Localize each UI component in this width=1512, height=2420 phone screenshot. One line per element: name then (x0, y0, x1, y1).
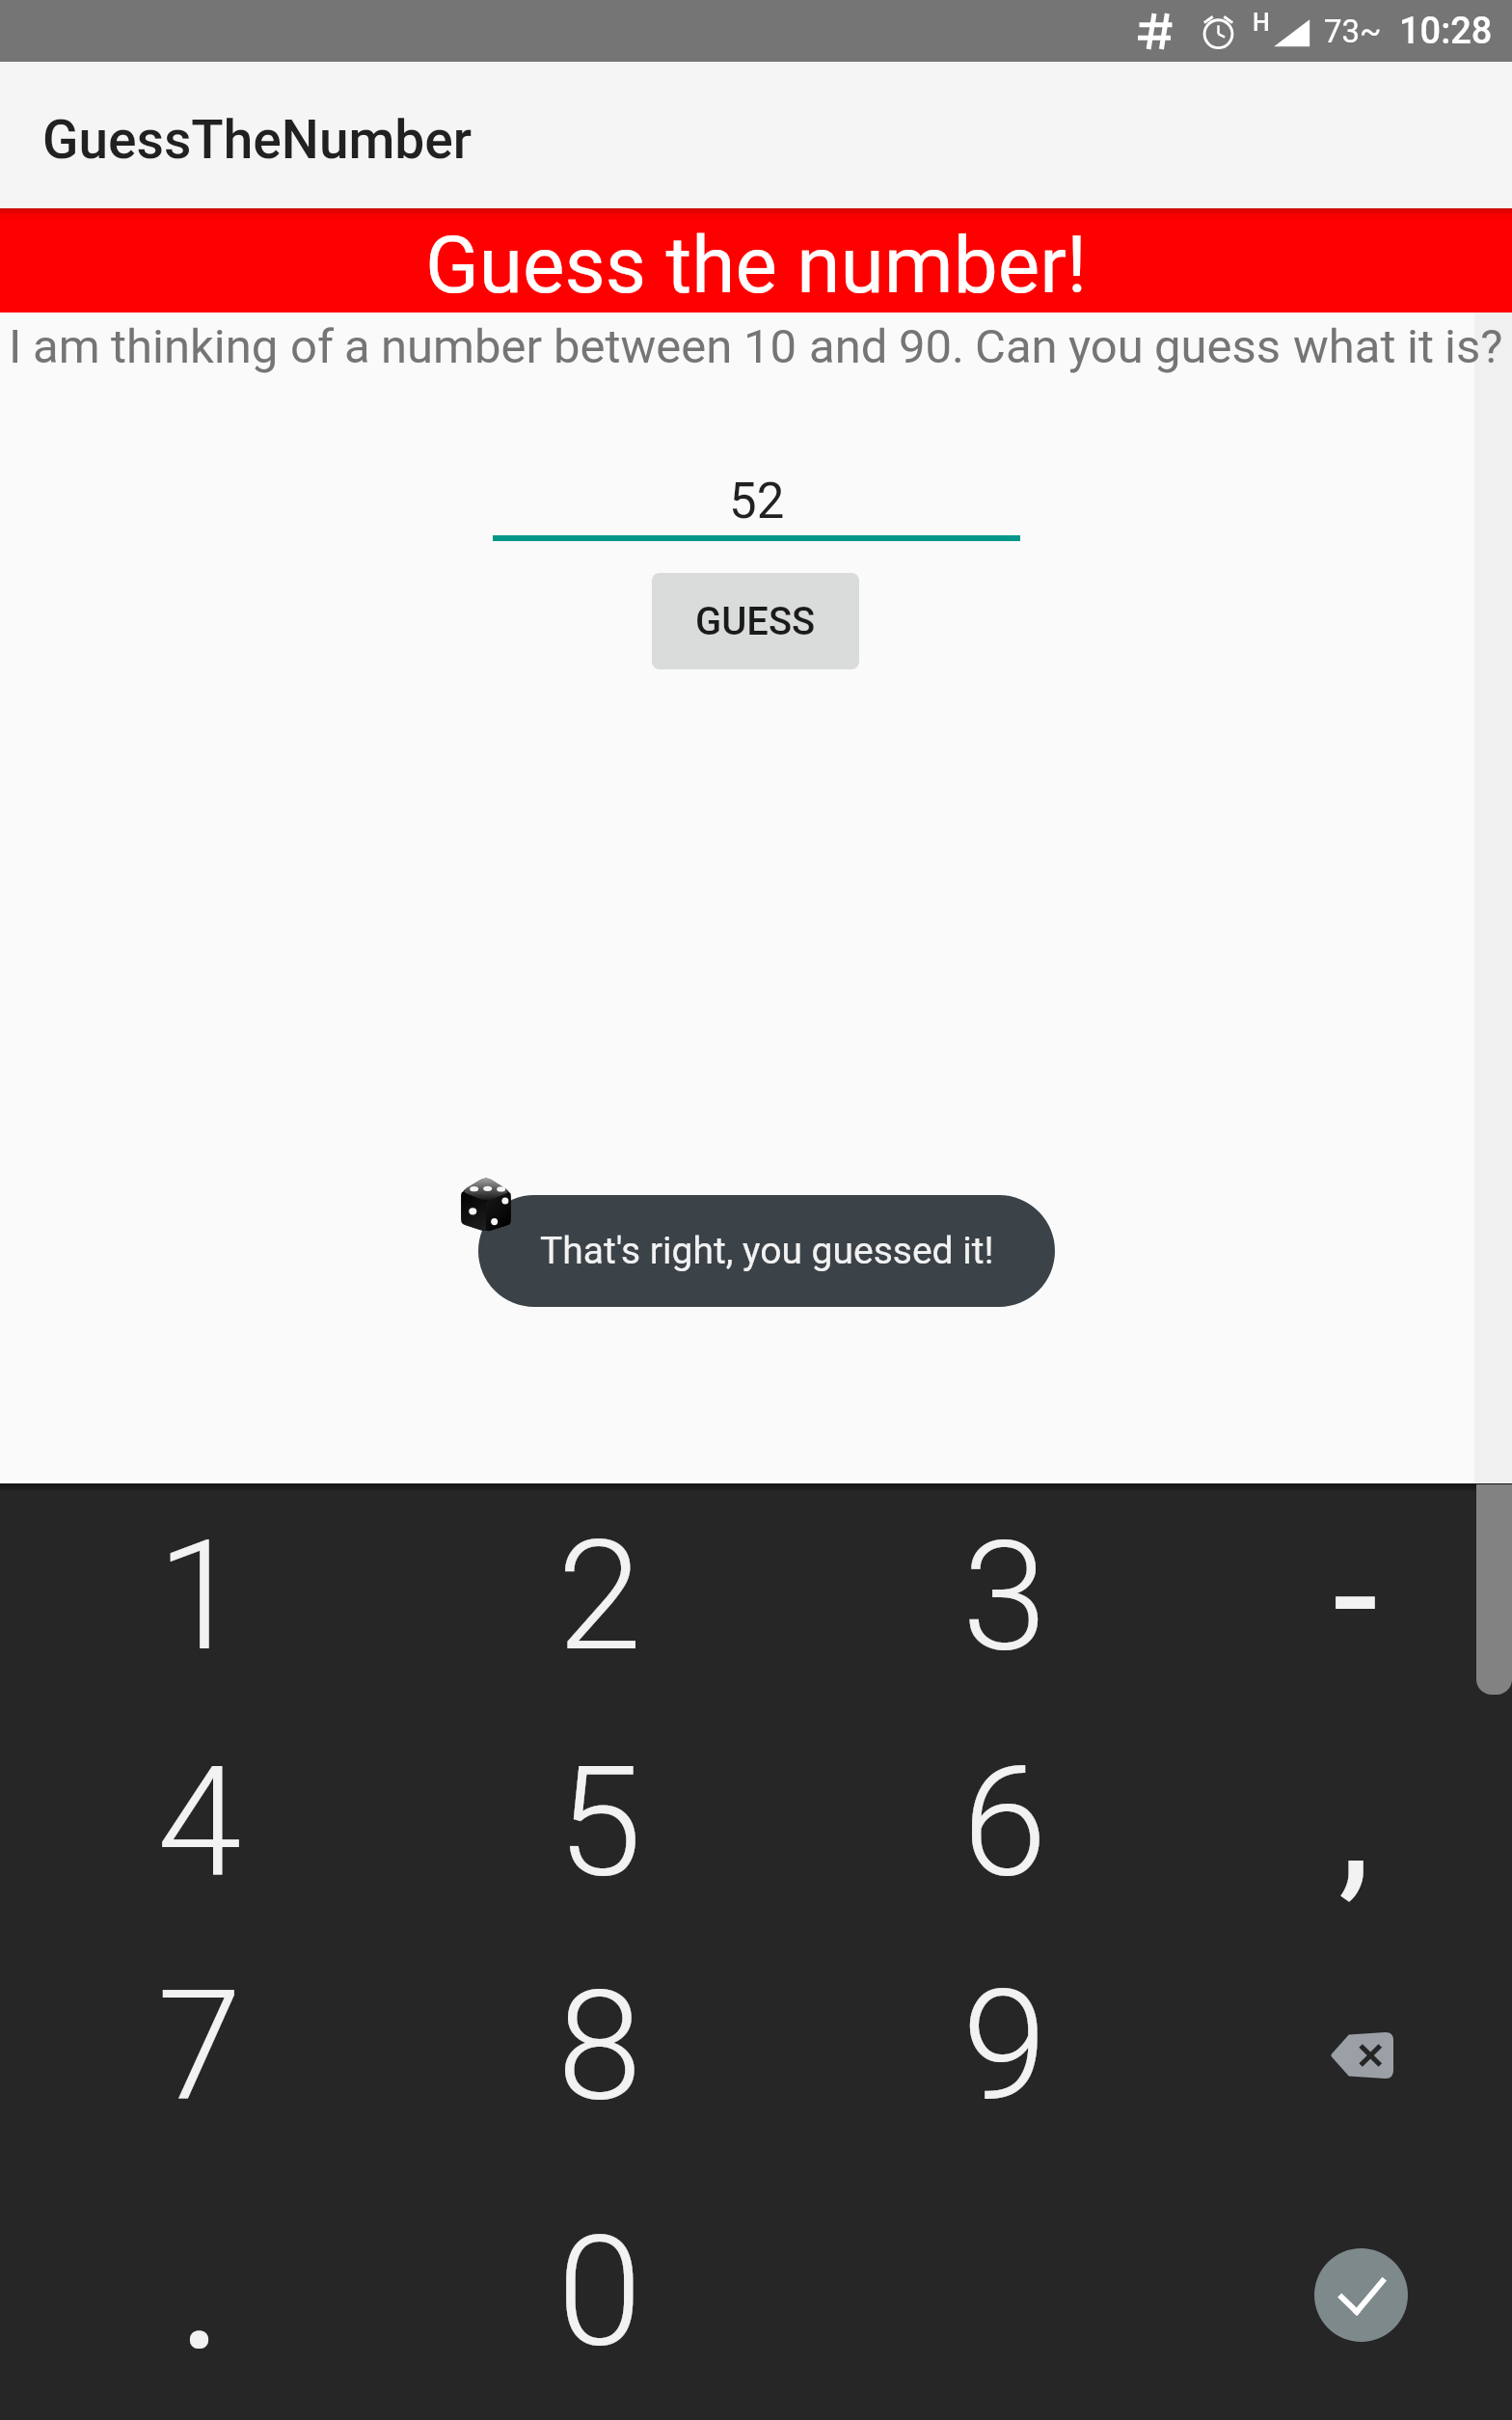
button[interactable]: . (26, 2185, 373, 2397)
button[interactable]: 0 (426, 2185, 773, 2397)
staticText: 4 (157, 1732, 242, 1911)
staticText: 7 (157, 1956, 242, 2134)
staticText: am (33, 319, 100, 374)
button[interactable]: GUESS (652, 573, 859, 669)
button[interactable]: 3 (831, 1489, 1178, 1701)
staticText: a (344, 319, 370, 374)
staticText: and (809, 319, 888, 374)
button[interactable]: - (1181, 1489, 1512, 1701)
button[interactable]: 6 (831, 1715, 1178, 1927)
staticText: . (178, 2195, 222, 2387)
staticText: I (9, 319, 22, 374)
button[interactable]: , (1181, 1715, 1512, 1927)
button[interactable]: 8 (426, 1939, 773, 2151)
staticText: of (290, 319, 334, 374)
staticText: 8 (557, 1956, 642, 2134)
staticText: 2 (557, 1507, 642, 1685)
staticText: 10 (743, 319, 797, 374)
staticText: 10:28 (1399, 10, 1493, 53)
staticText: guess (1154, 319, 1282, 374)
button[interactable]: 5 (426, 1715, 773, 1927)
staticText: 9 (962, 1956, 1047, 2134)
button[interactable]: 2 (426, 1489, 773, 1701)
button[interactable]: Enter (1255, 2198, 1467, 2391)
button[interactable]: 7 (26, 1939, 373, 2151)
staticText: between (553, 319, 733, 374)
staticText: 3 (962, 1507, 1047, 1685)
staticText: - (1333, 1500, 1378, 1692)
staticText: 5 (557, 1732, 642, 1911)
staticText: Can (975, 319, 1058, 374)
staticText: 1 (157, 1507, 242, 1685)
staticText: number (381, 319, 543, 374)
button[interactable]: Backspace (1255, 1978, 1468, 2133)
staticText: 6 (962, 1732, 1047, 1911)
staticText: it (1407, 319, 1434, 374)
button[interactable]: 4 (26, 1715, 373, 1927)
staticText: is? (1444, 319, 1503, 374)
button[interactable]: 1 (26, 1489, 373, 1701)
staticText: what (1293, 319, 1396, 374)
staticText: That's right, you guessed it! (540, 1229, 994, 1273)
button[interactable]: 9 (831, 1939, 1178, 2151)
staticText: GuessTheNumber (42, 109, 472, 171)
staticText: 0 (557, 2202, 642, 2380)
staticText: you (1068, 319, 1144, 374)
staticText: 73~ (1324, 13, 1382, 50)
staticText: , (1338, 1726, 1371, 1917)
staticText: H (1253, 9, 1270, 37)
staticText: 90. (899, 319, 964, 374)
button[interactable]: 52 (493, 456, 1020, 541)
staticText: Guess the number! (425, 219, 1088, 312)
staticText: GUESS (695, 599, 816, 644)
staticText: 52 (729, 473, 785, 530)
staticText: thinking (111, 319, 279, 374)
